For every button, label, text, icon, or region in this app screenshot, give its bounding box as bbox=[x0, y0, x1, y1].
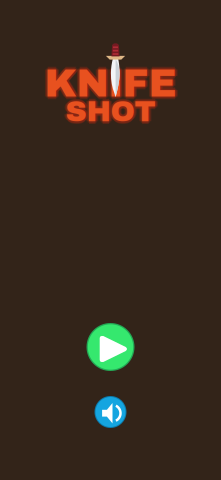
staticText: SHOT bbox=[67, 96, 157, 127]
staticText: SHOT bbox=[65, 96, 155, 127]
staticText: SHOT bbox=[67, 97, 157, 129]
staticText: KNIFE bbox=[43, 64, 175, 106]
button[interactable]: Play bbox=[86, 323, 134, 371]
staticText: SHOT bbox=[63, 96, 153, 127]
staticText: KNIFE bbox=[46, 61, 178, 103]
staticText: SHOT bbox=[65, 97, 155, 129]
staticText: KNIFE bbox=[43, 62, 175, 105]
staticText: KNIFE bbox=[44, 62, 176, 105]
staticText: KNIFE bbox=[46, 62, 178, 105]
staticText: SHOT bbox=[67, 94, 157, 126]
staticText: KNIFE bbox=[44, 61, 176, 103]
staticText: KNIFE bbox=[47, 62, 179, 105]
staticText: KNIFE bbox=[43, 61, 175, 103]
staticText: SHOT bbox=[65, 93, 155, 125]
staticText: KNIFE bbox=[44, 64, 176, 106]
staticText: SHOT bbox=[68, 96, 158, 127]
staticText: SHOT bbox=[64, 94, 154, 126]
staticText: KNIFE bbox=[44, 65, 176, 107]
staticText: SHOT bbox=[64, 97, 154, 129]
staticText: SHOT bbox=[65, 94, 155, 126]
staticText: SHOT bbox=[64, 96, 154, 127]
staticText: KNIFE bbox=[46, 64, 178, 106]
staticText: SHOT bbox=[65, 98, 155, 130]
button[interactable]: Sound bbox=[94, 396, 126, 428]
staticText: KNIFE bbox=[44, 60, 176, 102]
staticText: KNIFE bbox=[42, 62, 174, 105]
